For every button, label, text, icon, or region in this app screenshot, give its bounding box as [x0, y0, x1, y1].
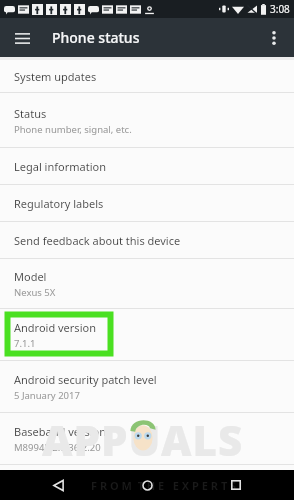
button[interactable]: Regulatory labels: [0, 185, 294, 222]
button[interactable]: More options: [260, 24, 288, 52]
staticText: Legal information: [14, 159, 106, 174]
staticText: Nexus 5X: [14, 286, 56, 299]
button[interactable]: Model: [0, 259, 294, 309]
staticText: Phone status: [52, 28, 140, 47]
button[interactable]: Home: [135, 473, 159, 497]
staticText: M8994F-2.6.36.2.20: [14, 441, 101, 454]
button[interactable]: Status: [0, 93, 294, 148]
staticText: Regulatory labels: [14, 196, 104, 211]
staticText: 7.1.1: [14, 337, 36, 350]
button[interactable]: Legal information: [0, 148, 294, 185]
staticText: Android security patch level: [14, 372, 157, 387]
staticText: 3:08: [270, 2, 290, 16]
staticText: Baseband version: [14, 424, 107, 439]
staticText: APPUALS: [42, 411, 244, 468]
staticText: Android version: [14, 320, 96, 335]
button[interactable]: Navigation menu: [8, 24, 36, 52]
button[interactable]: Send feedback about this device: [0, 222, 294, 259]
button[interactable]: Baseband version: [0, 413, 294, 465]
button[interactable]: Recent apps: [224, 473, 248, 497]
staticText: Phone number, signal, etc.: [14, 123, 132, 136]
button[interactable]: Back: [46, 473, 70, 497]
staticText: System updates: [14, 69, 97, 84]
button[interactable]: Android version: [0, 309, 294, 361]
button[interactable]: Android security patch level: [0, 361, 294, 413]
staticText: Model: [14, 269, 47, 284]
staticText: Send feedback about this device: [14, 233, 181, 248]
staticText: Status: [14, 106, 47, 121]
button[interactable]: System updates: [0, 60, 294, 93]
other: Highlight: [5, 312, 113, 356]
staticText: F R O M T H E E X P E R T S !: [91, 478, 243, 493]
staticText: 5 January 2017: [14, 389, 80, 402]
